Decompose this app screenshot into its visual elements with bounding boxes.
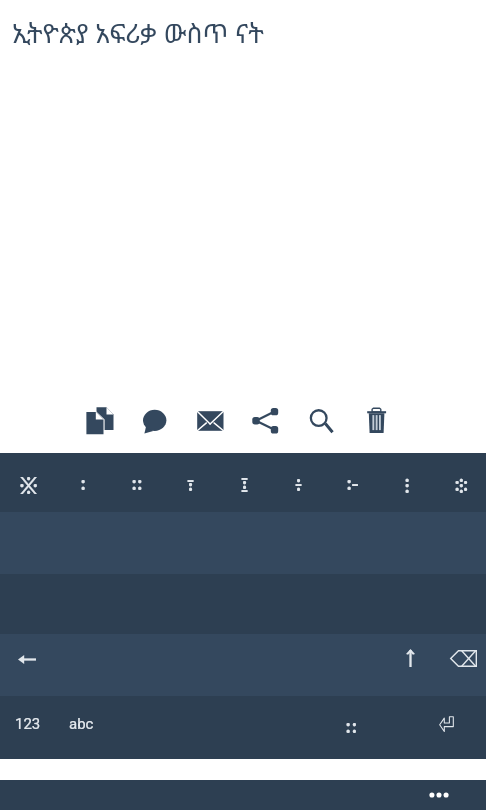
button[interactable]: ፡ xyxy=(54,452,108,513)
button[interactable]: Search xyxy=(293,393,347,447)
button[interactable]: Message xyxy=(128,393,182,447)
button[interactable]: ፥ xyxy=(270,452,324,513)
button[interactable]: Backspace xyxy=(439,634,486,696)
staticText: ፦ xyxy=(346,469,360,501)
button[interactable]: ፤ xyxy=(216,452,270,513)
staticText: ። xyxy=(131,469,143,501)
button[interactable]: Email xyxy=(183,393,237,447)
button[interactable]: ፦ xyxy=(324,452,378,513)
staticText: ፧ xyxy=(404,469,411,501)
staticText: ፠ xyxy=(20,469,38,501)
button[interactable]: Shift xyxy=(386,634,434,696)
staticText: ፡፡ xyxy=(345,712,358,744)
button[interactable]: 123 xyxy=(3,696,52,759)
staticText: ፣ xyxy=(186,469,196,501)
button[interactable]: More options xyxy=(423,779,455,810)
button[interactable]: Back xyxy=(2,634,51,696)
button[interactable]: ፠ xyxy=(0,452,54,513)
button[interactable]: Share xyxy=(238,393,292,447)
staticText: ፡ xyxy=(80,469,87,501)
staticText: ፨ xyxy=(454,469,469,501)
staticText: 123 xyxy=(15,715,41,733)
button[interactable]: ፨ xyxy=(432,452,486,513)
staticText: ኢትዮጵያ አፍሪቃ ውስጥ ናት xyxy=(12,15,264,50)
staticText: abc xyxy=(69,715,94,733)
staticText: ፤ xyxy=(240,469,250,501)
button[interactable]: ። xyxy=(108,452,162,513)
button[interactable]: abc xyxy=(56,696,106,759)
button[interactable]: Copy xyxy=(73,393,127,447)
button[interactable]: Enter xyxy=(422,696,471,759)
button[interactable]: ፣ xyxy=(162,452,216,513)
staticText: ፥ xyxy=(294,469,304,501)
button[interactable]: Delete xyxy=(348,393,402,447)
button[interactable]: ፧ xyxy=(378,452,432,513)
button[interactable]: ፡፡ xyxy=(327,696,376,757)
